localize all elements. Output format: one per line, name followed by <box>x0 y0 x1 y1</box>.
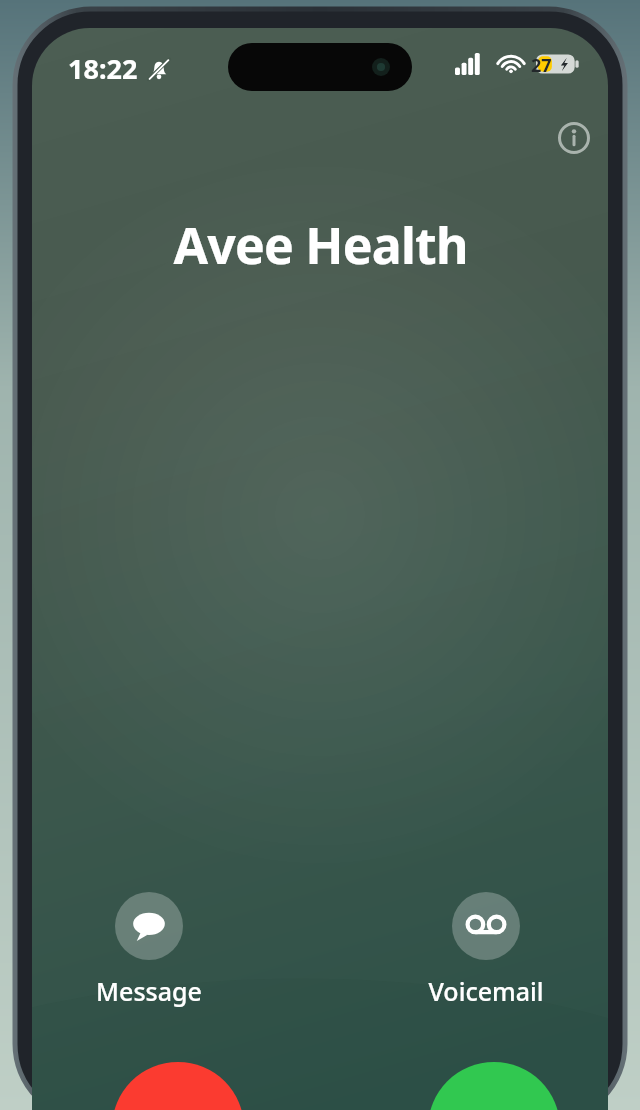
button[interactable]: Accept call <box>428 1062 560 1110</box>
button[interactable]: Decline call <box>112 1062 244 1110</box>
button[interactable]: Call info <box>546 110 602 166</box>
staticText: Message <box>96 974 202 1008</box>
button[interactable]: Voicemail <box>422 888 550 1012</box>
staticText: 27 <box>531 53 552 78</box>
staticText: Voicemail <box>428 974 544 1008</box>
button[interactable]: Message <box>90 888 208 1012</box>
staticText: 18:22 <box>68 50 138 87</box>
staticText: Avee Health <box>173 211 468 279</box>
